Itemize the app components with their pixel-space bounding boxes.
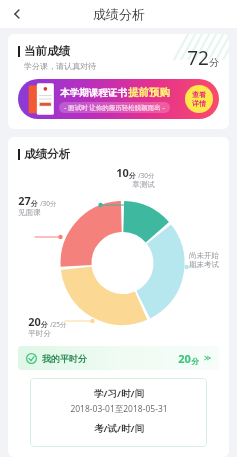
staticText: 章测试 [132, 180, 155, 189]
staticText: 分 [129, 171, 136, 180]
staticText: 分 [41, 320, 48, 329]
staticText: /30分 [136, 171, 155, 180]
staticText: 见面课 [18, 208, 41, 217]
staticText: 详情 [192, 99, 206, 108]
button[interactable]: 本学期课程证书 [18, 79, 219, 119]
staticText: 72 [187, 45, 209, 71]
staticText: 成绩分析 [24, 147, 70, 161]
staticText: 提前预购 [128, 86, 170, 99]
staticText: 平时分 [28, 329, 51, 338]
staticText: 考/试/时/间 [94, 422, 144, 435]
staticText: 分 [31, 199, 38, 208]
button[interactable]: Back [6, 3, 28, 25]
button[interactable]: 我的平时分 [18, 346, 219, 370]
staticText: 分 [209, 56, 219, 69]
staticText: 学分课，请认真对待 [24, 61, 96, 71]
staticText: /30分 [38, 199, 57, 208]
staticText: - 面试时 让你的履历轻松脱颖而出 - [64, 103, 165, 112]
staticText: 本学期课程证书 [59, 86, 128, 99]
staticText: 学/习/时/间 [94, 387, 144, 400]
staticText: 20 [178, 351, 191, 366]
staticText: 查看 [192, 90, 206, 99]
staticText: 我的平时分 [42, 353, 87, 364]
staticText: 20 [28, 314, 41, 329]
staticText: 期末考试 [189, 260, 219, 269]
staticText: 成绩分析 [93, 6, 145, 22]
staticText: 分 [191, 357, 199, 366]
staticText: 10 [116, 165, 129, 180]
staticText: /25分 [48, 320, 67, 329]
staticText: 当前成绩 [24, 44, 70, 58]
staticText: 2018-03-01至2018-05-31 [70, 403, 168, 415]
staticText: 27 [18, 193, 31, 208]
button[interactable]: 查看 [185, 85, 213, 113]
staticText: 尚未开始 [189, 251, 219, 260]
